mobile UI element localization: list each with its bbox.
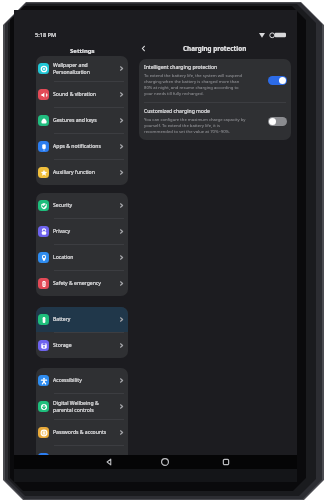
button[interactable]: System (36, 446, 128, 471)
button[interactable]: Customized charging mode (268, 117, 287, 126)
button[interactable]: Customized charging mode (139, 103, 291, 140)
staticText: Gestures and keys (53, 117, 97, 124)
staticText: Battery (53, 316, 71, 323)
staticText: 5:18 PM (35, 31, 57, 39)
button[interactable]: Apps & notifications (36, 134, 128, 159)
staticText: Customized charging mode (144, 108, 210, 115)
button[interactable]: Intelligent charging protection (268, 76, 287, 85)
staticText: Intelligent charging protection (144, 64, 218, 71)
button[interactable]: Battery (36, 307, 128, 332)
button[interactable]: Accessibility (36, 368, 128, 393)
staticText: Digital Wellbeing & (53, 400, 99, 407)
button[interactable]: Auxiliary function (36, 160, 128, 185)
button[interactable]: Back (101, 455, 116, 469)
staticText: Settings (70, 47, 95, 55)
staticText: Accessibility (53, 377, 82, 384)
staticText: Passwords & accounts (53, 429, 107, 436)
button[interactable]: Wallpaper and (36, 56, 128, 81)
staticText: Sound & vibration (53, 91, 96, 98)
staticText: To extend the battery life, the system w… (144, 73, 248, 97)
button[interactable]: Safety & emergency (36, 271, 128, 296)
staticText: Storage (53, 342, 72, 349)
staticText: Wallpaper and (53, 62, 88, 69)
button[interactable]: Passwords & accounts (36, 420, 128, 445)
button[interactable]: Privacy (36, 219, 128, 244)
staticText: parental controls (53, 407, 94, 414)
button[interactable]: Back (136, 41, 150, 55)
button[interactable]: Security (36, 193, 128, 218)
staticText: Safety & emergency (53, 280, 101, 287)
button[interactable]: Sound & vibration (36, 82, 128, 107)
button[interactable]: Home (157, 455, 172, 469)
button[interactable]: Gestures and keys (36, 108, 128, 133)
button[interactable]: Intelligent charging protection (139, 59, 291, 102)
staticText: Location (53, 254, 74, 261)
button[interactable]: Storage (36, 333, 128, 358)
staticText: Security (53, 202, 73, 209)
staticText: Privacy (53, 228, 70, 235)
staticText: Auxiliary function (53, 169, 95, 176)
staticText: Personalization (53, 69, 90, 76)
button[interactable]: Location (36, 245, 128, 270)
staticText: You can configure the maximum charge cap… (144, 117, 248, 135)
staticText: Charging protection (183, 44, 247, 53)
staticText: Apps & notifications (53, 143, 101, 150)
button[interactable]: Recent apps (218, 455, 233, 469)
button[interactable]: Digital Wellbeing & (36, 394, 128, 419)
